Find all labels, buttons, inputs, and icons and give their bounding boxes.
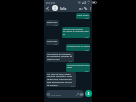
staticText: 9:47 [69, 60, 73, 62]
staticText: 9:44 [85, 17, 89, 19]
staticText: Tengo una consul [63, 27, 83, 30]
staticText: No hay de que, segui [47, 72, 71, 75]
button[interactable]: No hay de que, segui [46, 72, 76, 87]
staticText: 9:42 [54, 24, 58, 26]
staticText: 9:40 [85, 36, 89, 38]
button[interactable]: Tengo una consul [62, 27, 90, 38]
staticText: Aun sigue en revision, [47, 52, 72, 55]
button[interactable]: More options [88, 6, 93, 11]
staticText: Ya esta listo el docum [67, 44, 90, 47]
button[interactable]: Claro dig [46, 39, 59, 45]
staticText: te mismo [47, 83, 58, 86]
staticText: dalo [67, 65, 72, 68]
button[interactable]: Voice call [83, 6, 88, 11]
button[interactable]: Ya esta listo el docum [66, 44, 90, 51]
staticText: ta sobre el tramite que [63, 29, 89, 32]
staticText: 9:48 [85, 49, 89, 51]
staticText: 9:43 [54, 43, 58, 45]
staticText: Claro dig [47, 39, 58, 42]
staticText: ede escribirnos por es [47, 80, 72, 83]
button[interactable]: Hola buen [76, 13, 90, 19]
staticText: quier otra consulta pu [47, 77, 72, 80]
staticText: Sofia [60, 7, 67, 11]
staticText: 9:40 [71, 85, 75, 87]
staticText: mos en contacto. Cual [47, 74, 72, 77]
button[interactable]: Muchas gracias por to [66, 63, 90, 72]
button[interactable]: Message [46, 90, 84, 98]
staticText: la [63, 32, 65, 35]
staticText: Buen dia [47, 20, 57, 23]
button[interactable] [52, 5, 58, 11]
staticText: nemos nov [47, 57, 60, 60]
staticText: Hola buen [77, 13, 89, 16]
button[interactable]: Back [45, 6, 50, 11]
button[interactable]: Video call [78, 6, 83, 11]
staticText: le avisamos cuando te [47, 54, 72, 57]
button[interactable]: Aun sigue en revision, [46, 52, 74, 62]
staticText: 9:40 [85, 70, 89, 72]
staticText: Message [51, 93, 61, 96]
staticText: Muchas gracias por to [67, 63, 90, 66]
button[interactable]: Voice message [85, 90, 92, 97]
button[interactable]: Buen dia [46, 20, 59, 26]
